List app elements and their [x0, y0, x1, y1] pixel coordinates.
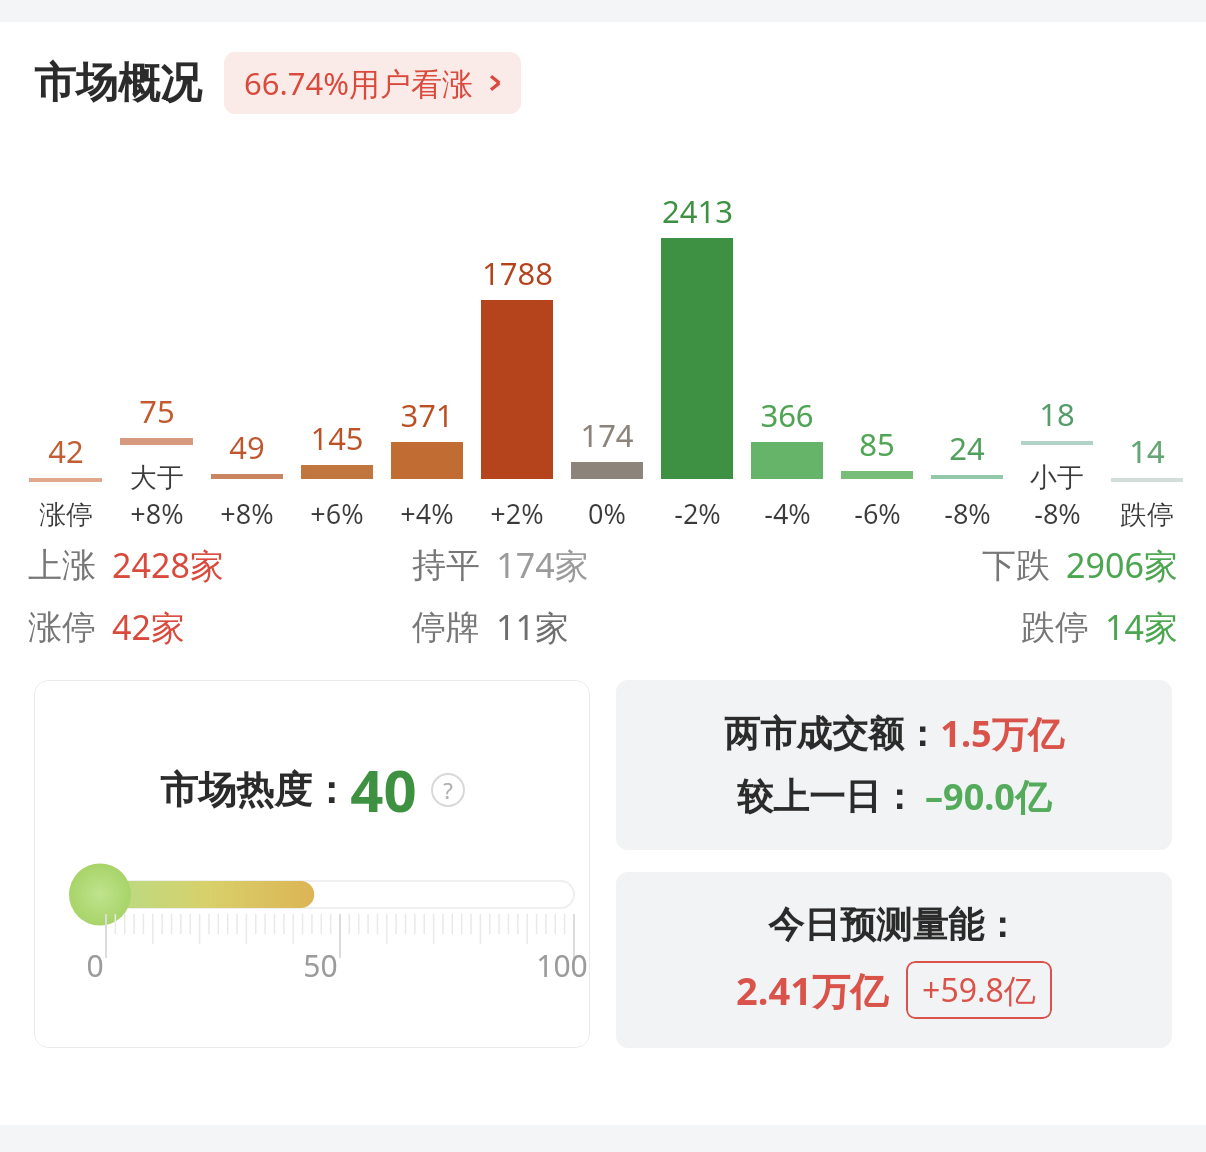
staticText: 2.41万亿: [736, 964, 888, 1016]
staticText: 66.74%用户看涨: [244, 62, 473, 104]
staticText: +8%: [220, 495, 274, 532]
staticText: 11家: [496, 604, 569, 650]
staticText: +8%: [130, 495, 184, 532]
staticText: 2413: [662, 190, 733, 232]
button[interactable]: 市场热度说明: [431, 773, 465, 807]
staticText: 174: [580, 414, 634, 456]
staticText: -2%: [674, 495, 721, 532]
staticText: 14家: [1105, 604, 1178, 650]
staticText: 较上一日：: [737, 774, 917, 819]
staticText: -8%: [944, 495, 991, 532]
staticText: 两市成交额：: [724, 711, 940, 756]
staticText: 涨停: [39, 498, 93, 532]
staticText: +4%: [400, 495, 454, 532]
staticText: 小于: [1030, 461, 1084, 495]
staticText: +2%: [490, 495, 544, 532]
staticText: 371: [400, 394, 454, 436]
staticText: 24: [949, 427, 985, 469]
staticText: +6%: [310, 495, 364, 532]
staticText: 145: [310, 417, 364, 459]
staticText: ?: [443, 775, 453, 805]
staticText: 2906家: [1066, 542, 1178, 588]
staticText: 1.5万亿: [940, 709, 1064, 758]
button[interactable]: 市场热度：: [34, 680, 590, 1048]
staticText: 跌停: [1021, 606, 1089, 649]
staticText: 49: [229, 426, 265, 468]
staticText: 14: [1129, 430, 1165, 472]
staticText: 市场概况: [34, 57, 202, 110]
staticText: 42家: [112, 604, 185, 650]
staticText: 停牌: [412, 606, 480, 649]
staticText: 跌停: [1120, 498, 1174, 532]
staticText: 今日预测量能：: [768, 902, 1020, 947]
staticText: 366: [760, 394, 814, 436]
staticText: 2428家: [112, 542, 224, 588]
staticText: 0: [86, 945, 104, 986]
staticText: 上涨: [28, 544, 96, 587]
staticText: 0%: [588, 495, 626, 532]
staticText: 40: [350, 750, 417, 829]
staticText: 持平: [412, 544, 480, 587]
button[interactable]: 两市成交额：: [616, 680, 1172, 850]
staticText: +59.8亿: [922, 968, 1036, 1012]
staticText: 75: [139, 390, 175, 432]
staticText: 100: [536, 945, 588, 986]
staticText: 42: [48, 430, 84, 472]
staticText: -4%: [764, 495, 811, 532]
staticText: -8%: [1034, 495, 1081, 532]
button[interactable]: 66.74%用户看涨: [224, 52, 521, 114]
staticText: 18: [1039, 393, 1075, 435]
staticText: -6%: [854, 495, 901, 532]
button[interactable]: 今日预测量能：: [616, 872, 1172, 1048]
staticText: –90.0亿: [925, 772, 1051, 821]
staticText: 大于: [130, 461, 184, 495]
staticText: 涨停: [28, 606, 96, 649]
staticText: 1788: [482, 252, 553, 294]
staticText: 174家: [496, 542, 589, 588]
staticText: 市场热度：: [160, 766, 350, 814]
staticText: 50: [303, 945, 338, 986]
staticText: 下跌: [982, 544, 1050, 587]
staticText: 85: [859, 423, 895, 465]
